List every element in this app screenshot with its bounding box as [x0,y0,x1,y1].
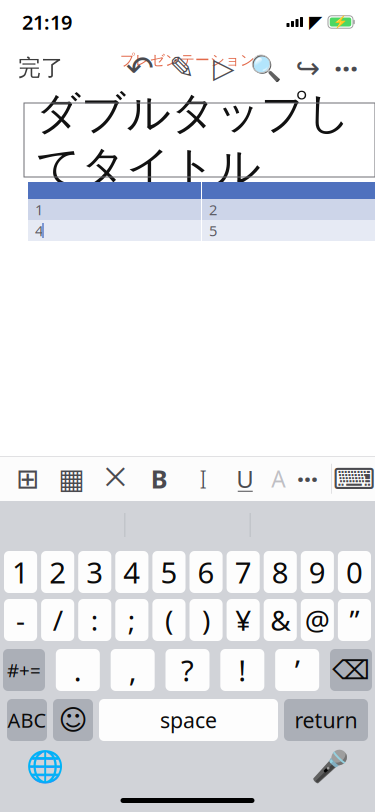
staticText: 🌐 [26,749,64,784]
button[interactable]: 7 [227,551,260,593]
button[interactable]: Table cell [5,457,49,501]
staticText: ! [238,650,246,689]
button[interactable]: 3 [78,551,111,593]
staticText: 8 [272,552,289,591]
button[interactable]: Undo [119,46,161,90]
button[interactable]: ABC [7,699,47,741]
staticText: / [53,601,63,639]
staticText: ↪ [295,51,320,85]
button[interactable]: B [137,457,181,501]
staticText: ABC [7,707,46,733]
button[interactable]: ’ [275,649,319,691]
button[interactable]: ? [165,649,209,691]
button[interactable]: ; [115,599,148,641]
staticText: ··· [297,461,318,496]
button[interactable]: & [264,599,297,641]
button[interactable]: 1 [4,551,37,593]
button[interactable]: ( [152,599,185,641]
staticText: 7 [235,552,252,591]
button[interactable]: Hide keyboard [332,457,375,501]
button[interactable]: Text colour [265,457,291,501]
staticText: ☺ [58,704,87,736]
staticText: 3 [86,552,103,591]
button[interactable]: Dictation [307,747,353,787]
staticText: ⌨ [333,462,375,495]
button[interactable]: Share [287,46,329,90]
button[interactable]: . [56,649,100,691]
button[interactable]: 2 [41,551,74,593]
button[interactable]: space [99,699,278,741]
button[interactable]: ¥ [227,599,260,641]
staticText: return [294,706,357,734]
staticText: 🎤 [311,749,349,784]
button[interactable]: Annotate [161,46,203,90]
staticText: ◤ [309,12,322,32]
button[interactable]: 4 [115,551,148,593]
staticText: A [271,464,285,494]
staticText: 21:19 [22,9,72,35]
button[interactable]: ! [220,649,264,691]
staticText: ⊞ [16,463,39,495]
button[interactable]: , [111,649,155,691]
staticText: & [270,601,290,639]
staticText: ) [202,601,210,639]
staticText: ··· [334,48,358,87]
staticText: 2 [49,552,66,591]
staticText: , [129,650,137,689]
button[interactable]: 0 [338,551,371,593]
staticText: ↶ [126,49,154,87]
button[interactable]: Emoji [53,699,93,741]
staticText: B [151,462,168,495]
staticText: ✎ [169,51,195,85]
staticText: ⨉ [105,466,125,491]
button[interactable]: ) [189,599,223,641]
button[interactable]: More [329,46,363,90]
staticText: ’ [295,650,300,689]
staticText: ダブルタップしてタイトル [36,86,351,194]
staticText: ? [181,650,194,689]
button[interactable]: @ [301,599,334,641]
button[interactable]: - [4,599,37,641]
button[interactable]: 5 [152,551,185,593]
button[interactable]: Play [203,46,245,90]
button[interactable]: Formula [93,457,137,501]
button[interactable]: 9 [301,551,334,593]
staticText: ; [128,601,136,639]
staticText: ¥ [235,601,251,639]
staticText: 1 [12,552,29,591]
button[interactable]: ” [338,599,371,641]
staticText: 0 [346,552,363,591]
button[interactable]: / [41,599,74,641]
staticText: : [91,601,99,639]
button[interactable]: #+= [3,649,45,691]
staticText: プレゼンテーション [120,51,255,69]
staticText: 1 [35,200,43,219]
staticText: ⚡ [333,15,348,29]
staticText: U [236,463,254,495]
staticText: 5 [209,221,217,240]
staticText: 4 [123,552,140,591]
staticText: 6 [197,552,214,591]
button[interactable]: : [78,599,111,641]
button[interactable]: Table [49,457,93,501]
staticText: 9 [309,552,326,591]
button[interactable]: More formatting [291,457,323,501]
staticText: 🔍 [250,53,282,82]
staticText: @ [305,601,330,639]
staticText: ” [349,601,359,639]
staticText: . [74,650,82,689]
staticText: ▷ [213,52,235,84]
staticText: #+= [7,658,41,682]
staticText: 4 [35,221,43,240]
staticText: ⌫ [332,655,370,685]
button[interactable]: Delete [330,649,372,691]
button[interactable]: 完了 [12,46,70,90]
button[interactable]: U [225,457,265,501]
button[interactable]: 6 [189,551,223,593]
button[interactable]: Search [245,46,287,90]
staticText: I [199,462,207,495]
button[interactable]: 8 [264,551,297,593]
button[interactable]: I [181,457,225,501]
button[interactable]: Next keyboard [22,747,68,787]
button[interactable]: return [284,699,368,741]
